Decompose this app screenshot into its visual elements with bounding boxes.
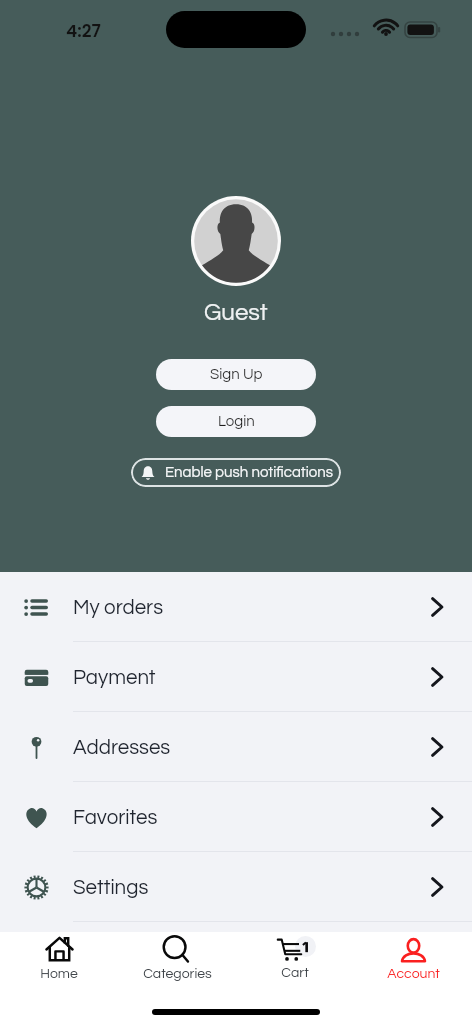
staticText: 4:27 (66, 19, 101, 43)
staticText: Settings (73, 877, 149, 898)
button[interactable]: My orders (0, 572, 472, 642)
staticText: Login (218, 414, 255, 429)
other: Cart, 1 item (274, 936, 316, 962)
other: Home (45, 936, 74, 963)
staticText: Payment (73, 667, 156, 688)
button[interactable]: Login (156, 406, 316, 437)
staticText: Categories (143, 967, 212, 981)
staticText: Enable push notifications (165, 465, 334, 480)
button[interactable]: Enable push notifications (131, 458, 341, 487)
staticText: My orders (73, 597, 164, 618)
button[interactable]: Sign Up (156, 359, 316, 390)
staticText: Home (40, 967, 78, 981)
button[interactable]: Account (354, 936, 472, 981)
staticText: Cart (281, 966, 309, 980)
other: Categories (163, 936, 192, 963)
button[interactable]: Settings (0, 852, 472, 922)
button[interactable]: Favorites (0, 782, 472, 852)
staticText: Addresses (73, 737, 171, 758)
staticText: Guest (204, 300, 268, 325)
button[interactable]: Payment (0, 642, 472, 712)
other: Account (399, 936, 428, 963)
staticText: Sign Up (210, 367, 263, 382)
staticText: Favorites (73, 807, 158, 828)
button[interactable]: Home (0, 936, 118, 981)
button[interactable]: Categories (118, 936, 236, 981)
staticText: Account (387, 967, 440, 981)
button[interactable]: Addresses (0, 712, 472, 782)
button[interactable]: Cart, 1 item (236, 936, 354, 980)
